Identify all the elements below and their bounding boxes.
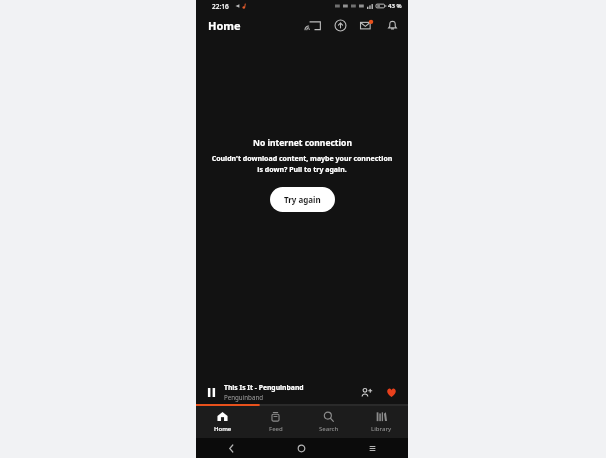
staticText: 43 %	[388, 2, 402, 10]
staticText: Couldn't download content, maybe your co…	[210, 154, 394, 174]
staticText: This Is It - Penguinband	[224, 383, 304, 392]
button[interactable]: Home	[266, 438, 337, 458]
button[interactable]: Cast	[306, 17, 322, 33]
button[interactable]: Like	[383, 384, 400, 401]
button[interactable]: Inbox	[358, 17, 374, 33]
button[interactable]: Add to playlist	[358, 384, 375, 401]
staticText: 22:16	[212, 2, 229, 11]
button[interactable]: Update	[332, 17, 348, 33]
button[interactable]: Recents	[337, 438, 408, 458]
staticText: Search	[319, 425, 339, 433]
button[interactable]: Library	[355, 411, 408, 433]
staticText: No internet connection	[253, 137, 352, 149]
button[interactable]: Try again	[270, 187, 335, 212]
button[interactable]: Pause	[203, 384, 219, 400]
staticText: Library	[371, 425, 392, 433]
staticText: Try again	[284, 194, 321, 205]
staticText: Feed	[269, 425, 283, 433]
button[interactable]: Back	[196, 438, 266, 458]
staticText: Penguinband	[224, 393, 264, 401]
button[interactable]: Feed	[249, 411, 302, 433]
staticText: Home	[208, 18, 241, 33]
button[interactable]: Home	[196, 411, 249, 433]
staticText: Home	[214, 425, 232, 433]
button[interactable]: Notifications	[384, 17, 400, 33]
button[interactable]: Search	[302, 411, 355, 433]
